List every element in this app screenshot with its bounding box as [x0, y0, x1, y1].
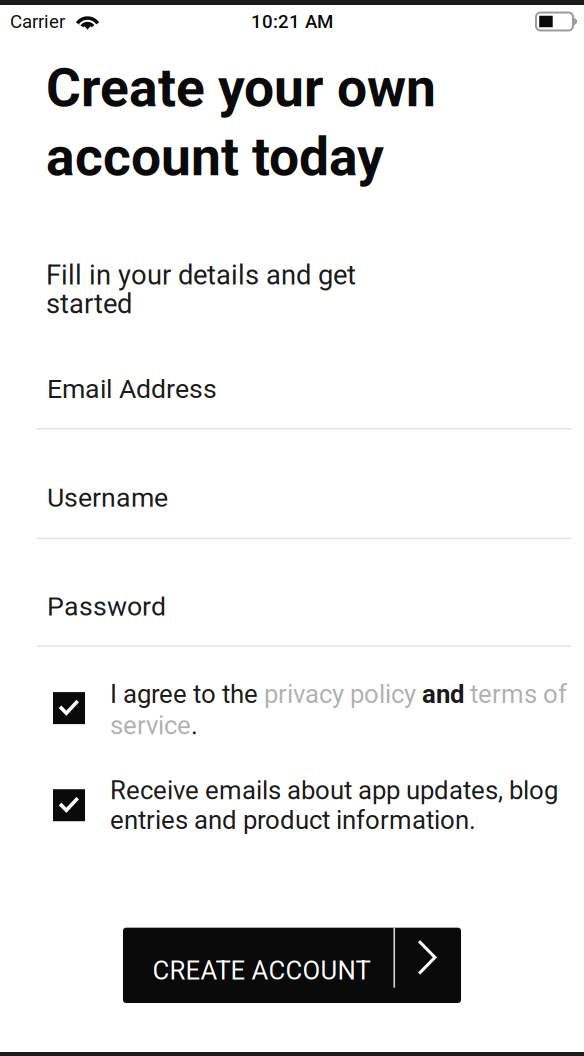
- button[interactable]: Username: [0, 429, 584, 539]
- staticText: I agree to the privacy policy and terms …: [110, 679, 567, 709]
- staticText: Create your own: [46, 57, 436, 119]
- staticText: Receive emails about app updates, blog: [110, 775, 558, 806]
- staticText: CREATE ACCOUNT: [152, 956, 370, 986]
- button[interactable]: Password: [0, 539, 584, 647]
- staticText: Fill in your details and get: [46, 259, 356, 291]
- button[interactable]: Receive emails about app updates, blog: [0, 741, 584, 835]
- staticText: Carrier: [10, 11, 65, 32]
- staticText: account today: [46, 126, 384, 188]
- staticText: Password: [47, 591, 166, 622]
- staticText: Email Address: [47, 373, 217, 405]
- staticText: entries and product information.: [110, 805, 476, 835]
- button[interactable]: Email Address: [0, 320, 584, 430]
- staticText: 10:21 AM: [251, 11, 333, 32]
- staticText: started: [46, 288, 132, 320]
- button[interactable]: CREATE ACCOUNT: [123, 928, 461, 1003]
- staticText: service.: [110, 710, 198, 741]
- staticText: Username: [47, 482, 168, 513]
- button[interactable]: I agree to the privacy policy and terms …: [0, 647, 584, 741]
